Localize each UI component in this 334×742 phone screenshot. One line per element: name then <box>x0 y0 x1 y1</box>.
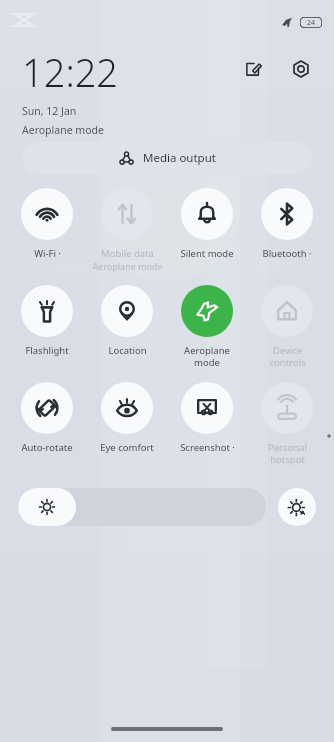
staticText: Media output <box>143 150 216 166</box>
staticText: Mobile data <box>101 247 154 260</box>
button[interactable]: Location <box>88 285 166 357</box>
button[interactable]: Wi-Fi <box>8 188 86 260</box>
staticText: Wi-Fi · <box>34 247 61 260</box>
button[interactable]: Flashlight <box>8 285 86 357</box>
button[interactable]: Screenshot <box>168 382 246 454</box>
button[interactable]: Eye comfort <box>88 382 166 454</box>
button[interactable]: Auto-rotate <box>8 382 86 454</box>
staticText: Sun, 12 Jan <box>22 104 77 118</box>
staticText: Aeroplane mode <box>92 260 163 272</box>
staticText: Eye comfort <box>100 441 154 454</box>
staticText: Auto-rotate <box>21 441 73 454</box>
staticText: Silent mode <box>180 247 234 260</box>
staticText: Location <box>108 344 147 357</box>
button[interactable]: Bluetooth <box>248 188 326 260</box>
button[interactable]: Device controls <box>248 285 326 369</box>
button[interactable]: Personal hotspot <box>248 382 326 466</box>
button[interactable]: Silent mode <box>168 188 246 260</box>
button[interactable]: Brightness <box>18 488 266 526</box>
staticText: Aeroplane mode <box>184 344 230 369</box>
staticText: Personal hotspot <box>268 441 307 466</box>
staticText: Bluetooth · <box>262 247 312 260</box>
staticText: 24 <box>307 18 316 28</box>
button[interactable]: Edit <box>236 52 270 86</box>
staticText: Device controls <box>269 344 306 369</box>
button[interactable]: Settings <box>284 52 318 86</box>
staticText: Aeroplane mode <box>22 123 104 137</box>
button[interactable]: Mobile data <box>88 188 166 272</box>
button[interactable]: Media output <box>22 142 312 174</box>
staticText: 12:22 <box>22 46 119 98</box>
button[interactable]: Aeroplane mode <box>168 285 246 369</box>
staticText: Flashlight <box>25 344 69 357</box>
button[interactable]: Automatic brightness <box>278 488 316 526</box>
staticText: Screenshot · <box>180 441 235 454</box>
